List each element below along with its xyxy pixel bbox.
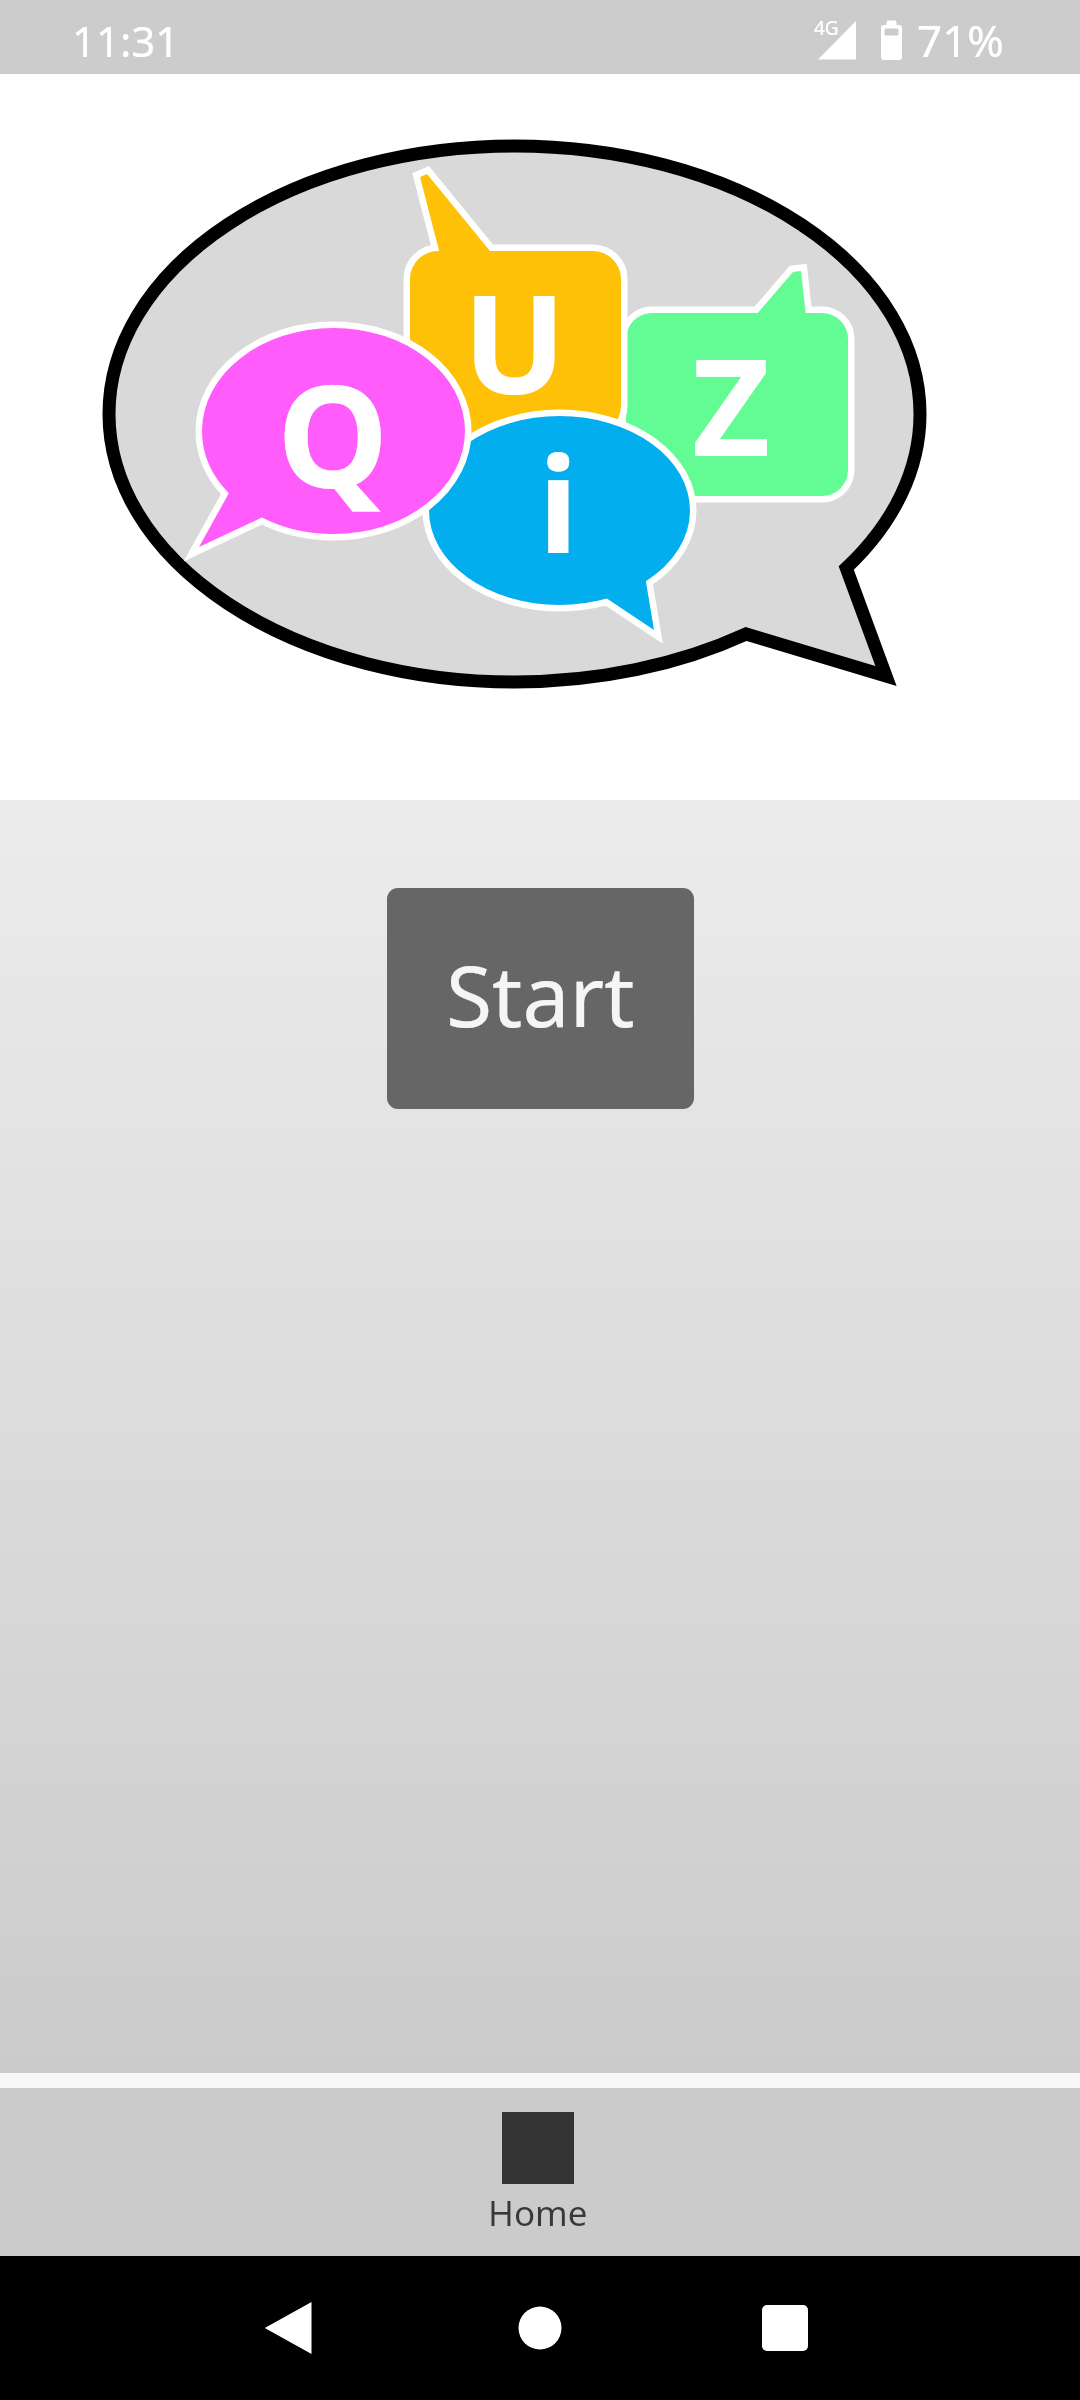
button[interactable]: Home — [448, 2088, 628, 2256]
staticText: Start — [446, 937, 635, 1051]
button[interactable]: Start — [387, 888, 694, 1109]
staticText: Home — [488, 2189, 588, 2237]
button[interactable]: Home — [450, 2256, 630, 2400]
button[interactable]: Back — [200, 2256, 380, 2400]
button[interactable]: Recent apps — [700, 2256, 880, 2400]
